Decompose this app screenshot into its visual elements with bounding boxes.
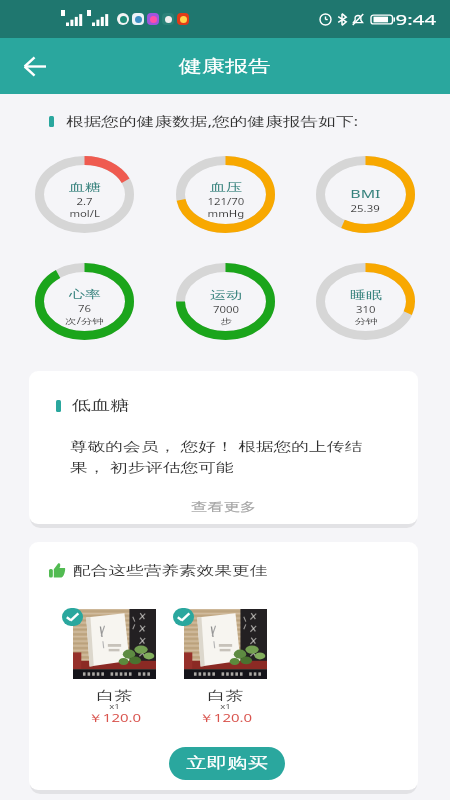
staticText: 121/70 xyxy=(207,196,244,207)
staticText: 血糖 xyxy=(69,180,101,194)
button[interactable]: 立即购买 xyxy=(169,747,285,780)
staticText: 9:44 xyxy=(396,9,436,29)
staticText: ￥120.0 xyxy=(58,710,171,725)
staticText: 血压 xyxy=(210,180,242,194)
staticText: 步 xyxy=(220,316,232,326)
staticText: 次/分钟 xyxy=(65,315,104,326)
button[interactable]: Back xyxy=(17,48,53,84)
staticText: 查看更多 xyxy=(29,499,418,514)
staticText: 310 xyxy=(356,304,376,315)
staticText: 配合这些营养素效果更佳 xyxy=(73,562,267,578)
staticText: 2.7 xyxy=(76,196,93,207)
staticText: 分钟 xyxy=(355,316,377,326)
staticText: 睡眠 xyxy=(350,288,382,302)
staticText: mol/L xyxy=(69,208,101,219)
button[interactable]: 低血糖 xyxy=(29,371,418,524)
staticText: x1 xyxy=(169,702,282,712)
staticText: 尊敬的会员， 您好！ 根据您的上传结果， 初步评估您可能 xyxy=(70,437,388,476)
staticText: 白茶 xyxy=(169,687,282,703)
staticText: BMI xyxy=(350,186,381,201)
staticText: x1 xyxy=(58,702,171,712)
staticText: 立即购买 xyxy=(186,754,268,773)
button[interactable]: Selected xyxy=(62,608,83,626)
staticText: mmHg xyxy=(207,208,244,219)
staticText: 健康报告 xyxy=(179,56,271,77)
staticText: 25.39 xyxy=(351,203,380,214)
staticText: ￥120.0 xyxy=(169,710,282,725)
staticText: 根据您的健康数据,您的健康报告如下: xyxy=(66,112,358,130)
button[interactable]: Selected xyxy=(173,608,194,626)
staticText: 7000 xyxy=(213,304,240,315)
staticText: 白茶 xyxy=(58,687,171,703)
staticText: 低血糖 xyxy=(72,397,129,415)
staticText: 76 xyxy=(78,303,92,314)
staticText: 运动 xyxy=(210,288,242,302)
staticText: 心率 xyxy=(69,287,101,301)
